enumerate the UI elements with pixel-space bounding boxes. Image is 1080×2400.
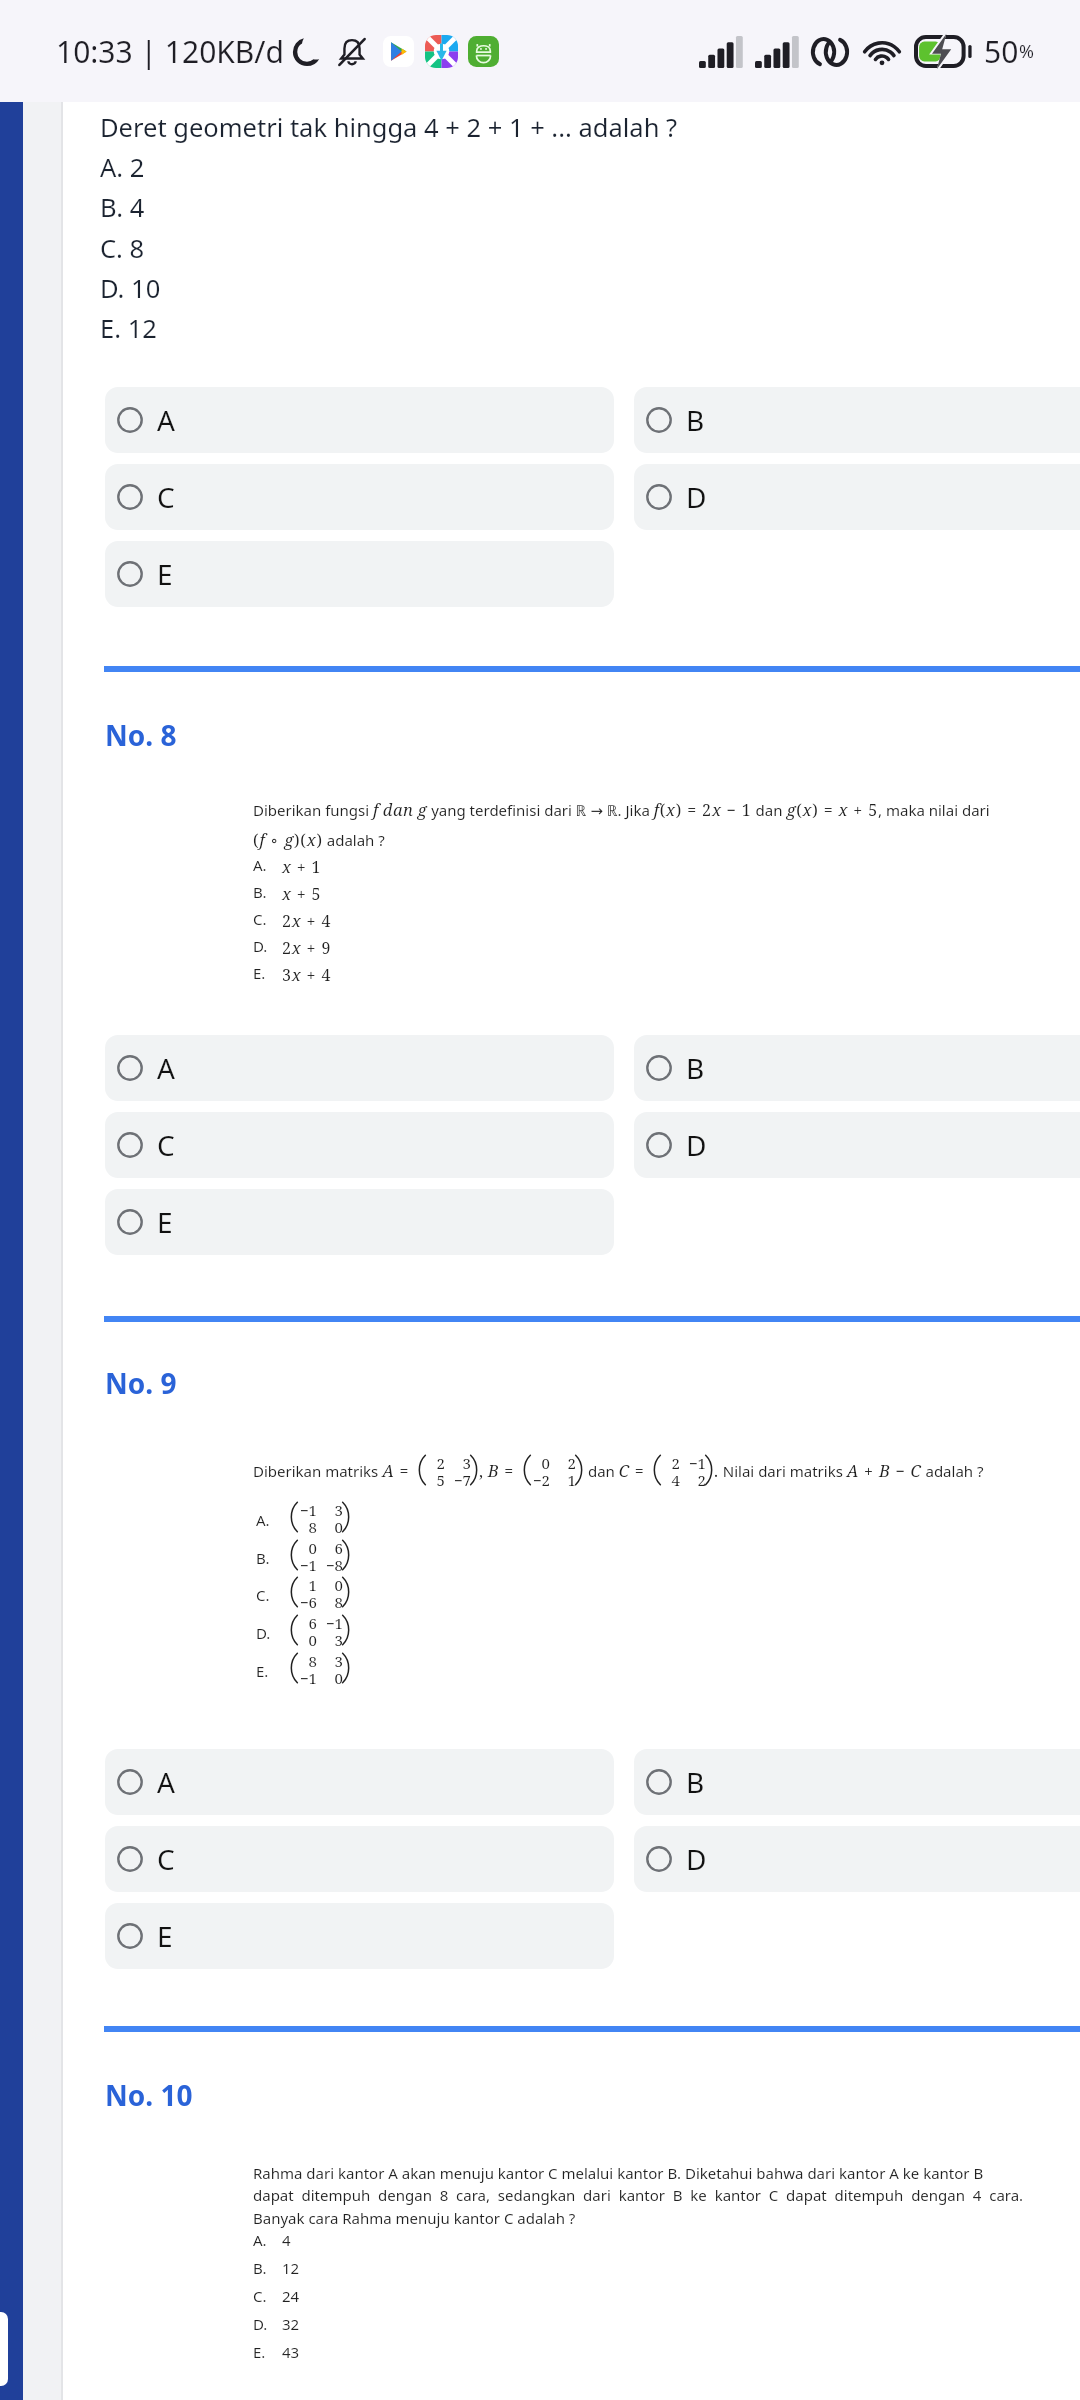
staticText: 8 — [291, 1517, 317, 1533]
staticText: −1 — [317, 1613, 343, 1629]
staticText: Diberikan fungsi f dan g yang terdefinis… — [253, 798, 990, 820]
staticText: 10:33 | 120KB/d — [56, 31, 284, 72]
button[interactable]: A — [105, 1035, 614, 1101]
staticText: E. — [253, 2342, 266, 2362]
staticText: −1 — [291, 1555, 317, 1571]
staticText: 0 — [317, 1668, 343, 1684]
staticText: 3x + 4 — [282, 963, 332, 985]
staticText: 24 — [282, 2286, 300, 2306]
staticText: C — [157, 1126, 175, 1164]
staticText: (f ∘ g)(x) adalah ? — [253, 828, 385, 850]
staticText: % — [1019, 39, 1034, 64]
staticText: −2 — [524, 1470, 550, 1486]
staticText: , B = — [479, 1459, 520, 1481]
staticText: −1 — [291, 1668, 317, 1684]
staticText: B. 4 — [100, 190, 145, 225]
staticText: D — [686, 1840, 707, 1878]
button[interactable]: E — [105, 1189, 614, 1255]
staticText: Banyak cara Rahma menuju kantor C adalah… — [253, 2208, 576, 2228]
staticText: Diberikan matriks A = — [253, 1459, 415, 1481]
staticText: B — [686, 401, 705, 439]
staticText: 6 — [317, 1538, 343, 1554]
staticText: 5 — [419, 1470, 445, 1486]
staticText: 2 — [680, 1470, 706, 1486]
staticText: D. — [253, 936, 268, 956]
button[interactable]: A — [105, 387, 614, 453]
staticText: −8 — [317, 1555, 343, 1571]
staticText: B. — [256, 1548, 270, 1568]
staticText: 2x + 4 — [282, 909, 332, 931]
staticText: −1 — [291, 1500, 317, 1516]
staticText: B. — [253, 2258, 267, 2278]
staticText: A — [157, 1049, 175, 1087]
staticText: −6 — [291, 1592, 317, 1608]
staticText: −7 — [445, 1470, 471, 1486]
staticText: C — [157, 1840, 175, 1878]
staticText: 6 — [291, 1613, 317, 1629]
staticText: 4 — [654, 1470, 680, 1486]
staticText: 0 — [291, 1630, 317, 1646]
staticText: 50 — [984, 31, 1019, 72]
staticText: 2 — [550, 1453, 576, 1469]
staticText: E — [157, 1203, 173, 1241]
staticText: C. 8 — [100, 231, 145, 266]
staticText: E. 12 — [100, 311, 157, 346]
staticText: dapat ditempuh dengan 8 cara, sedangkan … — [253, 2185, 1024, 2205]
staticText: 8 — [291, 1651, 317, 1667]
button[interactable]: C — [105, 464, 614, 530]
staticText: B — [686, 1049, 705, 1087]
staticText: B. — [253, 882, 267, 902]
button[interactable]: B — [634, 1035, 1080, 1101]
staticText: A. — [253, 855, 267, 875]
staticText: A — [157, 401, 175, 439]
staticText: 0 — [524, 1453, 550, 1469]
button[interactable]: C — [105, 1826, 614, 1892]
staticText: 32 — [282, 2314, 300, 2334]
button[interactable]: D — [634, 464, 1080, 530]
staticText: 1 — [550, 1470, 576, 1486]
staticText: 3 — [317, 1651, 343, 1667]
staticText: A. — [256, 1510, 270, 1530]
button[interactable]: A — [105, 1749, 614, 1815]
staticText: 0 — [291, 1538, 317, 1554]
staticText: C. — [253, 2286, 267, 2306]
staticText: 43 — [282, 2342, 300, 2362]
staticText: Rahma dari kantor A akan menuju kantor C… — [253, 2163, 984, 2183]
staticText: C. — [256, 1585, 270, 1605]
staticText: C — [157, 478, 175, 516]
staticText: B — [686, 1763, 705, 1801]
staticText: 2x + 9 — [282, 936, 332, 958]
button[interactable]: B — [634, 1749, 1080, 1815]
button[interactable]: C — [105, 1112, 614, 1178]
button[interactable]: B — [634, 387, 1080, 453]
staticText: 2 — [654, 1453, 680, 1469]
staticText: D. 10 — [100, 271, 161, 306]
staticText: D. — [253, 2314, 268, 2334]
staticText: A. 2 — [100, 150, 145, 185]
staticText: . Nilai dari matriks A + B − C adalah ? — [714, 1459, 984, 1481]
staticText: 3 — [317, 1630, 343, 1646]
staticText: −1 — [680, 1453, 706, 1469]
staticText: Deret geometri tak hingga 4 + 2 + 1 + ..… — [100, 110, 678, 145]
staticText: C. — [253, 909, 267, 929]
staticText: x + 1 — [282, 855, 322, 877]
staticText: D — [686, 478, 707, 516]
button[interactable]: D — [634, 1826, 1080, 1892]
staticText: D — [686, 1126, 707, 1164]
button[interactable]: E — [105, 541, 614, 607]
button[interactable]: D — [634, 1112, 1080, 1178]
button[interactable]: E — [105, 1903, 614, 1969]
staticText: dan C = — [584, 1459, 650, 1481]
staticText: E. — [253, 963, 266, 983]
staticText: 3 — [445, 1453, 471, 1469]
staticText: 3 — [317, 1500, 343, 1516]
staticText: E — [157, 1917, 173, 1955]
staticText: 2 — [419, 1453, 445, 1469]
staticText: No. 8 — [105, 716, 177, 754]
staticText: 4 — [282, 2230, 291, 2250]
staticText: x + 5 — [282, 882, 322, 904]
staticText: 0 — [317, 1517, 343, 1533]
staticText: D. — [256, 1623, 271, 1643]
staticText: A. — [253, 2230, 267, 2250]
staticText: 0 — [317, 1575, 343, 1591]
